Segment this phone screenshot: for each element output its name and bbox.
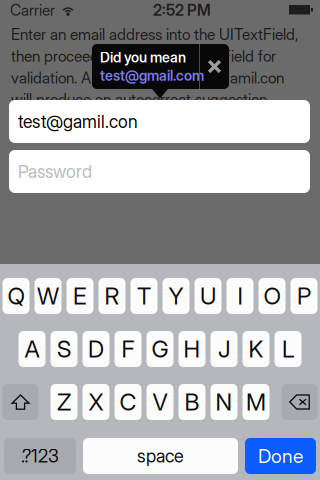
staticText: V — [152, 388, 167, 416]
staticText: I — [237, 282, 242, 310]
button[interactable]: A — [18, 331, 45, 367]
staticText: validation. An email ending in @gamil.co… — [11, 68, 284, 87]
staticText: J — [218, 335, 230, 363]
staticText: O — [263, 282, 280, 310]
staticText: W — [37, 282, 59, 310]
button[interactable]: J — [210, 331, 237, 367]
staticText: F — [121, 335, 134, 363]
button[interactable]: R — [98, 278, 125, 314]
button[interactable]: P — [290, 278, 317, 314]
button[interactable]: E — [66, 278, 93, 314]
button[interactable]: B — [178, 384, 205, 420]
button[interactable]: Y — [162, 278, 189, 314]
button[interactable]: V — [146, 384, 173, 420]
button[interactable]: K — [242, 331, 269, 367]
button[interactable]: H — [178, 331, 205, 367]
staticText: test@gamil.con — [18, 111, 138, 132]
staticText: T — [137, 282, 151, 310]
staticText: K — [248, 335, 263, 363]
staticText: E — [73, 282, 87, 310]
button[interactable]: Delete — [281, 384, 317, 420]
staticText: Password — [18, 161, 92, 182]
button[interactable]: U — [194, 278, 221, 314]
staticText: 2:52 PM — [153, 1, 211, 19]
button[interactable]: Dismiss suggestion — [200, 44, 229, 89]
staticText: H — [183, 335, 200, 363]
staticText: B — [184, 388, 199, 416]
button[interactable]: S — [50, 331, 77, 367]
button[interactable]: Done — [245, 438, 316, 474]
button[interactable]: I — [226, 278, 253, 314]
staticText: P — [297, 282, 311, 310]
staticText: G — [151, 335, 168, 363]
staticText: Enter an email address into the UITextFi… — [11, 25, 298, 44]
button[interactable]: O — [258, 278, 285, 314]
button[interactable]: space — [83, 438, 238, 474]
staticText: test@gmail.com — [100, 67, 204, 84]
staticText: N — [215, 388, 232, 416]
button[interactable]: Shift — [2, 384, 38, 420]
staticText: Q — [7, 282, 24, 310]
staticText: Carrier — [10, 1, 55, 19]
button[interactable]: X — [82, 384, 109, 420]
staticText: space — [137, 445, 184, 467]
staticText: D — [88, 335, 104, 363]
staticText: will produce an autocorrect suggestion. — [11, 90, 270, 109]
staticText: C — [119, 388, 136, 416]
button[interactable]: C — [114, 384, 141, 420]
button[interactable]: Password — [9, 150, 310, 193]
button[interactable]: Q — [2, 278, 29, 314]
staticText: Z — [57, 388, 71, 416]
staticText: .?123 — [21, 445, 59, 467]
staticText: X — [88, 388, 103, 416]
staticText: then proceed to the next UITextField for — [11, 47, 276, 65]
staticText: L — [282, 335, 294, 363]
button[interactable]: Z — [50, 384, 77, 420]
staticText: Did you mean — [100, 49, 186, 66]
button[interactable]: test@gamil.con — [9, 100, 310, 143]
button[interactable]: G — [146, 331, 173, 367]
button[interactable]: L — [274, 331, 301, 367]
staticText: Y — [168, 282, 183, 310]
staticText: U — [200, 282, 216, 310]
button[interactable]: .?123 — [4, 438, 76, 474]
staticText: M — [246, 388, 266, 416]
staticText: A — [24, 335, 39, 363]
staticText: Done — [258, 444, 303, 468]
button[interactable]: F — [114, 331, 141, 367]
button[interactable]: T — [130, 278, 157, 314]
staticText: R — [104, 282, 119, 310]
staticText: S — [57, 335, 71, 363]
button[interactable]: M — [242, 384, 269, 420]
button[interactable]: D — [82, 331, 109, 367]
button[interactable]: N — [210, 384, 237, 420]
button[interactable]: W — [34, 278, 61, 314]
